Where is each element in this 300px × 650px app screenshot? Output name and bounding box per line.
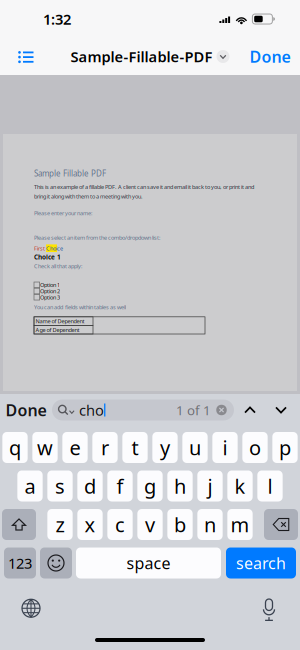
button[interactable]: search	[226, 547, 296, 578]
staticText: search	[236, 552, 286, 574]
staticText: r	[101, 434, 109, 461]
button[interactable]: a	[17, 470, 43, 501]
staticText: Choi	[46, 244, 57, 252]
button[interactable]: c	[107, 509, 133, 540]
staticText: j	[207, 473, 212, 499]
button[interactable]: f	[107, 470, 133, 501]
button[interactable]: space	[76, 547, 221, 578]
staticText: 123	[8, 553, 32, 573]
button[interactable]: d	[77, 470, 103, 501]
button[interactable]: w	[32, 432, 58, 463]
staticText: Done	[249, 46, 290, 67]
staticText: Choice 1	[34, 252, 61, 261]
staticText: m	[230, 511, 249, 538]
staticText: ce	[57, 244, 63, 252]
staticText: This is an example of a fillable PDF. A …	[34, 183, 254, 190]
staticText: Sample-Fillable-PDF	[70, 47, 212, 66]
staticText: g	[144, 473, 156, 499]
staticText: s	[55, 473, 65, 499]
staticText: Sample Fillable PDF	[34, 168, 106, 179]
staticText: u	[189, 434, 201, 461]
staticText: Option 2	[40, 287, 60, 295]
button[interactable]: l	[257, 470, 283, 501]
staticText: o	[249, 434, 261, 461]
staticText: x	[84, 511, 95, 538]
staticText: p	[279, 434, 291, 461]
button[interactable]: Done	[248, 38, 292, 75]
button[interactable]: q	[2, 432, 28, 463]
staticText: space	[126, 552, 170, 574]
button[interactable]: r	[92, 432, 118, 463]
staticText: 1 of 1	[176, 401, 211, 419]
button[interactable]: t	[122, 432, 148, 463]
button[interactable]: i	[212, 432, 238, 463]
staticText: d	[84, 473, 96, 499]
staticText: Done	[5, 399, 46, 421]
button[interactable]: Dictate	[248, 594, 290, 622]
button[interactable]: j	[197, 470, 223, 501]
staticText: cho	[79, 400, 104, 420]
staticText: First	[34, 244, 46, 252]
button[interactable]: Shift	[2, 509, 36, 540]
button[interactable]: g	[137, 470, 163, 501]
button[interactable]: s	[47, 470, 73, 501]
button[interactable]: Clear search	[215, 403, 228, 416]
staticText: You can add fields within tables as well	[34, 303, 126, 311]
button[interactable]: k	[227, 470, 253, 501]
button[interactable]: h	[167, 470, 193, 501]
staticText: v	[145, 511, 155, 538]
button[interactable]: b	[167, 509, 193, 540]
staticText: i	[222, 434, 227, 461]
button[interactable]: Done	[0, 395, 52, 425]
staticText: Option 3	[40, 293, 60, 301]
staticText: c	[115, 511, 125, 538]
staticText: e	[69, 434, 80, 461]
button[interactable]: z	[47, 509, 73, 540]
staticText: Age of Dependent	[35, 326, 79, 333]
staticText: Name of Dependent	[35, 317, 84, 325]
staticText: a	[24, 473, 35, 499]
button[interactable]: u	[182, 432, 208, 463]
staticText: z	[55, 511, 64, 538]
staticText: Option 1	[40, 281, 60, 289]
staticText: k	[234, 473, 245, 499]
button[interactable]: p	[272, 432, 298, 463]
button[interactable]: Previous result	[234, 395, 266, 425]
staticText: Please enter your name:	[34, 209, 93, 217]
button[interactable]: Sample-Fillable-PDF	[70, 38, 229, 75]
staticText: f	[116, 473, 123, 499]
staticText: n	[204, 511, 216, 538]
button[interactable]: e	[62, 432, 88, 463]
button[interactable]: 123	[4, 547, 36, 578]
button[interactable]: x	[77, 509, 103, 540]
button[interactable]: v	[137, 509, 163, 540]
staticText: q	[9, 434, 21, 461]
button[interactable]: Next result	[266, 395, 296, 425]
button[interactable]: y	[152, 432, 178, 463]
staticText: l	[267, 473, 272, 499]
button[interactable]: Delete	[264, 509, 298, 540]
staticText: bring it along with them to a meeting wi…	[34, 192, 143, 200]
staticText: b	[174, 511, 186, 538]
staticText: t	[131, 434, 138, 461]
button[interactable]: Switch keyboard	[10, 594, 52, 622]
staticText: h	[174, 473, 186, 499]
button[interactable]: n	[197, 509, 223, 540]
staticText: y	[160, 434, 170, 461]
staticText: w	[37, 434, 53, 461]
button[interactable]: m	[227, 509, 253, 540]
staticText: Please select an item from the combo/dro…	[34, 234, 161, 241]
staticText: 1:32	[43, 9, 71, 29]
button[interactable]: Page thumbnails	[8, 38, 44, 75]
button[interactable]: Emoji	[40, 547, 72, 578]
button[interactable]: o	[242, 432, 268, 463]
staticText: Check all that apply:	[34, 262, 83, 270]
